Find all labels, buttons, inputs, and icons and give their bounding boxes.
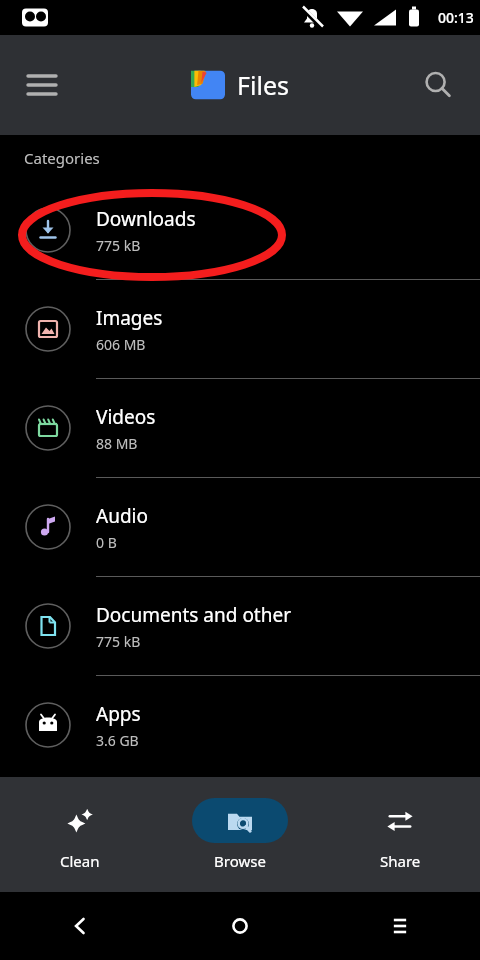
button[interactable]: Images bbox=[0, 280, 480, 378]
staticText: 00:13 bbox=[438, 8, 474, 27]
staticText: Documents and other bbox=[96, 602, 292, 628]
staticText: Browse bbox=[214, 851, 266, 871]
button[interactable]: Downloads bbox=[0, 181, 480, 279]
button[interactable]: Clean bbox=[0, 777, 160, 892]
staticText: 88 MB bbox=[96, 434, 138, 453]
button[interactable]: Recent apps bbox=[320, 892, 480, 960]
button[interactable]: Audio bbox=[0, 478, 480, 576]
staticText: Files bbox=[237, 68, 289, 102]
staticText: 3.6 GB bbox=[96, 731, 139, 750]
staticText: Clean bbox=[60, 851, 100, 871]
button[interactable]: Search bbox=[410, 57, 466, 113]
button[interactable]: Documents and other bbox=[0, 577, 480, 675]
staticText: 606 MB bbox=[96, 335, 146, 354]
button[interactable]: Back bbox=[0, 892, 160, 960]
button[interactable]: Home bbox=[160, 892, 320, 960]
button[interactable]: Videos bbox=[0, 379, 480, 477]
staticText: 775 kB bbox=[96, 632, 141, 651]
button[interactable]: Share bbox=[320, 777, 480, 892]
staticText: Categories bbox=[24, 148, 100, 168]
staticText: Downloads bbox=[96, 206, 196, 232]
button[interactable]: Browse bbox=[160, 777, 320, 892]
staticText: Apps bbox=[96, 701, 141, 727]
staticText: Audio bbox=[96, 503, 148, 529]
button[interactable]: Apps bbox=[0, 676, 480, 774]
staticText: 0 B bbox=[96, 533, 117, 552]
staticText: Share bbox=[380, 851, 421, 871]
staticText: Videos bbox=[96, 404, 156, 430]
button[interactable]: Open navigation menu bbox=[14, 57, 70, 113]
staticText: 775 kB bbox=[96, 236, 141, 255]
staticText: Images bbox=[96, 305, 163, 331]
